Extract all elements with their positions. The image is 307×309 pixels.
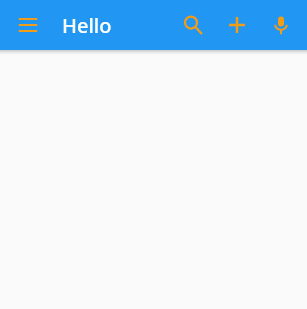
button[interactable]: Voice search [259,3,303,47]
button[interactable]: Add [215,3,259,47]
button[interactable]: Open navigation menu [8,5,48,45]
staticText: Hello [62,12,112,39]
button[interactable]: Search [171,3,215,47]
